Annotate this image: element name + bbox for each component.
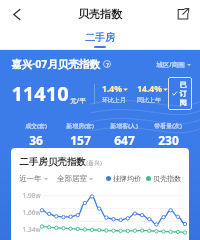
staticText: 贝壳指数: [78, 7, 122, 21]
staticText: 元/平: [70, 96, 86, 105]
staticText: 新增客(人): [110, 122, 138, 130]
staticText: 157: [70, 132, 91, 148]
staticText: 近一年: [19, 174, 42, 183]
staticText: (嘉兴): [86, 159, 102, 167]
staticText: 二手房贝壳指数: [19, 156, 86, 168]
staticText: 贝壳指数: [153, 174, 181, 183]
button[interactable]: 成交(套): [14, 122, 58, 148]
button[interactable]: 新增客(人): [102, 122, 146, 148]
staticText: 14.4%: [137, 83, 162, 95]
staticText: 带看量(次): [154, 122, 182, 130]
button[interactable]: Share: [173, 4, 193, 24]
staticText: 1.34w: [22, 225, 41, 234]
button[interactable]: 贝壳指数: [146, 174, 181, 183]
staticText: 230: [158, 132, 179, 148]
button[interactable]: 挂牌均价: [106, 174, 141, 183]
staticText: 同比上年: [137, 96, 161, 104]
staticText: 新增房(套): [66, 122, 94, 130]
button[interactable]: 近一年: [19, 174, 48, 183]
button[interactable]: 二手房: [85, 31, 115, 48]
button[interactable]: 带看量(次): [146, 122, 190, 148]
button[interactable]: 已订阅: [168, 77, 192, 110]
staticText: 1.98w: [22, 191, 41, 200]
staticText: 嘉兴·07月贝壳指数: [11, 57, 100, 71]
staticText: 城区/商圈: [156, 60, 185, 69]
staticText: 11410: [11, 80, 69, 107]
staticText: 36: [29, 132, 43, 148]
staticText: 二手房: [85, 31, 115, 44]
button[interactable]: Back: [6, 3, 28, 25]
staticText: 成交(套): [25, 122, 47, 130]
button[interactable]: 城区/商圈: [156, 60, 191, 69]
staticText: 环比上月: [102, 96, 126, 104]
staticText: 已订阅: [178, 80, 188, 107]
staticText: 647: [114, 132, 135, 148]
staticText: 1.66w: [22, 208, 41, 217]
button[interactable]: 全部居室: [57, 174, 93, 183]
staticText: 1.4%: [102, 83, 122, 95]
staticText: ?: [106, 61, 109, 68]
staticText: 全部居室: [57, 174, 87, 183]
button[interactable]: 新增房(套): [58, 122, 102, 148]
button[interactable]: 说明: [103, 60, 111, 68]
staticText: 挂牌均价: [113, 174, 141, 183]
